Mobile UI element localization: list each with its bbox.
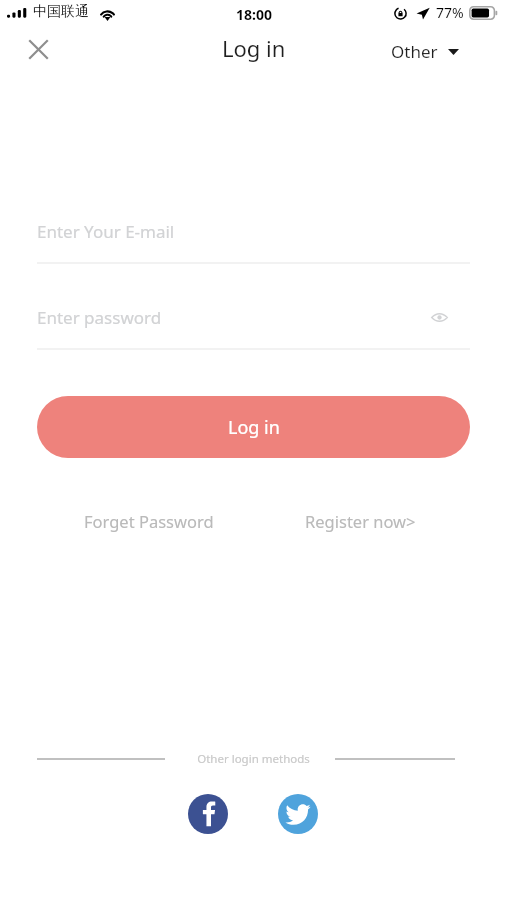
staticText: Enter Your E-mail: [37, 220, 175, 243]
staticText: Enter password: [37, 306, 162, 329]
staticText: Register now>: [305, 510, 416, 532]
staticText: Log in: [222, 33, 286, 63]
button[interactable]: Enter Your E-mail: [37, 213, 470, 249]
button[interactable]: Forget Password: [72, 501, 226, 541]
button[interactable]: Sign in with Twitter: [278, 794, 318, 834]
button[interactable]: Other: [381, 34, 469, 69]
staticText: Log in: [228, 415, 280, 440]
button[interactable]: Sign in with Facebook: [188, 794, 228, 834]
staticText: 77%: [436, 3, 464, 22]
staticText: Other login methods: [197, 751, 310, 767]
button[interactable]: Register now>: [293, 501, 428, 541]
staticText: 18:00: [236, 5, 272, 24]
staticText: 中国联通: [33, 3, 89, 21]
button[interactable]: Show password: [425, 303, 453, 331]
staticText: Forget Password: [84, 510, 214, 532]
button[interactable]: Close: [16, 27, 60, 71]
button[interactable]: Log in: [37, 396, 470, 458]
staticText: Other: [391, 40, 438, 63]
button[interactable]: Enter password: [37, 299, 470, 335]
